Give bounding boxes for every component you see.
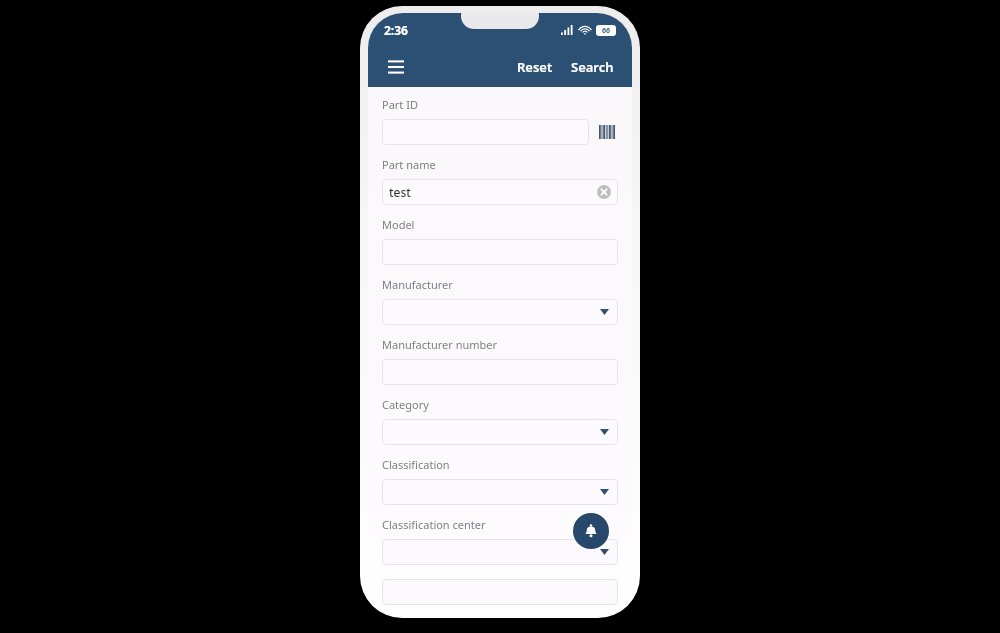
button[interactable]: Notifications <box>573 513 609 549</box>
button[interactable]: Scan barcode <box>596 121 618 143</box>
button[interactable]: Menu <box>382 53 410 81</box>
staticText: test <box>389 184 411 200</box>
button[interactable]: Open dropdown <box>382 299 618 325</box>
other: Open dropdown <box>597 305 611 319</box>
staticText: 66 <box>602 26 611 36</box>
button[interactable]: Reset <box>513 54 557 80</box>
staticText: Model <box>382 217 415 232</box>
button[interactable]: test <box>382 179 618 205</box>
staticText: Reset <box>517 58 553 76</box>
button[interactable]: Search <box>567 54 618 80</box>
staticText: 2:36 <box>384 22 408 38</box>
other: Open dropdown <box>597 485 611 499</box>
other: Open dropdown <box>597 545 611 559</box>
button[interactable] <box>382 579 618 605</box>
button[interactable]: Open dropdown <box>382 479 618 505</box>
button[interactable] <box>382 239 618 265</box>
staticText: Part ID <box>382 97 418 112</box>
button[interactable]: Open dropdown <box>382 539 618 565</box>
staticText: Search <box>571 58 614 76</box>
button[interactable]: Clear text <box>597 185 611 199</box>
staticText: Part name <box>382 157 436 172</box>
button[interactable] <box>382 359 618 385</box>
staticText: Category <box>382 397 429 412</box>
staticText: Manufacturer <box>382 277 453 292</box>
other: Open dropdown <box>597 425 611 439</box>
staticText: Classification center <box>382 517 486 532</box>
button[interactable]: Open dropdown <box>382 419 618 445</box>
staticText: Classification <box>382 457 450 472</box>
button[interactable] <box>382 119 589 145</box>
staticText: Manufacturer number <box>382 337 498 352</box>
